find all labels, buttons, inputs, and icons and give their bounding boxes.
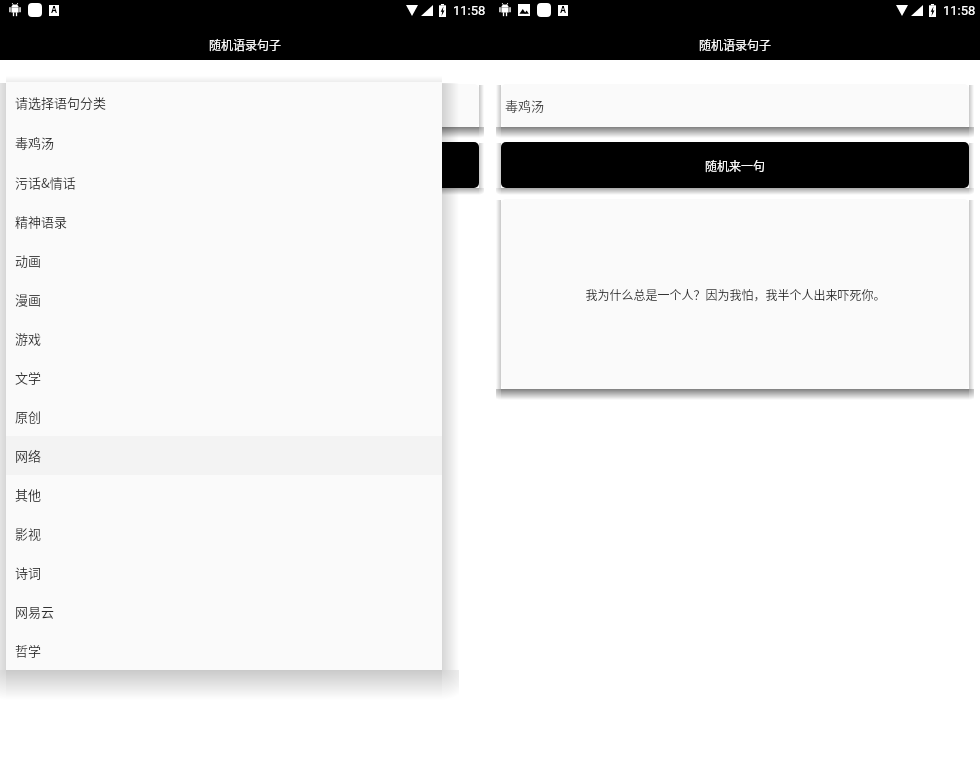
other: Screenshot [518,4,530,16]
button[interactable]: 随机来一句 [501,142,969,188]
staticText: A [560,5,567,16]
button[interactable]: 游戏 [6,319,442,358]
staticText: 网易云 [15,602,55,621]
other: Android [9,3,21,17]
button[interactable]: 网络 [6,436,442,475]
staticText: 哲学 [15,641,42,660]
staticText: 影视 [15,524,42,543]
staticText: 我为什么总是一个人？因为我怕，我半个人出来吓死你。 [585,286,886,303]
staticText: 动画 [15,251,42,270]
staticText: 11:58 [943,3,976,18]
button[interactable]: 污话&情话 [6,162,442,202]
button[interactable]: 动画 [6,241,442,280]
button[interactable]: 毒鸡汤 [501,84,969,127]
staticText: 精神语录 [15,212,68,231]
button[interactable]: 其他 [6,475,442,514]
button[interactable]: 网易云 [6,592,442,631]
button[interactable]: 文学 [6,358,442,397]
staticText: 11:58 [453,3,486,18]
button[interactable]: 我为什么总是一个人？因为我怕，我半个人出来吓死你。 [501,199,969,389]
staticText: A [51,5,58,16]
staticText: 网络 [15,446,42,465]
other: Battery [439,4,446,17]
button[interactable]: 影视 [6,514,442,553]
button[interactable]: 哲学 [6,631,442,670]
other: Signal [421,5,433,16]
button[interactable]: 原创 [6,397,442,436]
button[interactable]: 毒鸡汤 [6,122,442,162]
button[interactable]: 诗词 [6,553,442,592]
staticText: 游戏 [15,329,42,348]
staticText: 原创 [15,407,42,426]
other: Android [499,3,511,17]
staticText: 毒鸡汤 [15,133,55,152]
staticText: 随机语录句子 [699,36,772,53]
other: Signal [911,5,923,16]
staticText: 污话&情话 [15,173,76,192]
staticText: 漫画 [15,290,42,309]
staticText: 其他 [15,485,42,504]
staticText: 毒鸡汤 [505,96,545,115]
button[interactable] [11,84,479,127]
staticText: 诗词 [15,563,42,582]
staticText: 随机来一句 [705,157,766,174]
other: Battery [929,4,936,17]
staticText: 文学 [15,368,42,387]
button[interactable]: 精神语录 [6,202,442,241]
button[interactable]: 随机来一句 [11,142,479,188]
button[interactable]: 漫画 [6,280,442,319]
other: Wifi [406,5,418,16]
staticText: 随机语录句子 [209,36,282,53]
button[interactable]: 请选择语句分类 [6,82,442,122]
other: Wifi [896,5,908,16]
staticText: 请选择语句分类 [15,93,107,112]
